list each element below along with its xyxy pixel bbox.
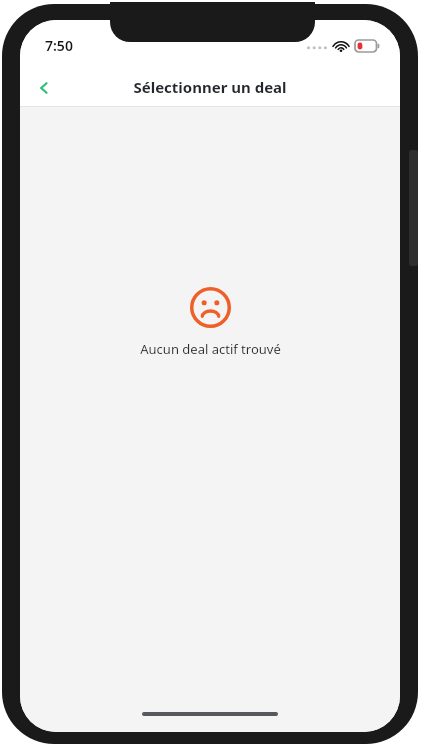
staticText: 7:50 — [45, 36, 73, 55]
staticText: Aucun deal actif trouvé — [140, 340, 281, 358]
staticText: Sélectionner un deal — [133, 77, 287, 97]
button[interactable]: Retour — [28, 72, 59, 103]
